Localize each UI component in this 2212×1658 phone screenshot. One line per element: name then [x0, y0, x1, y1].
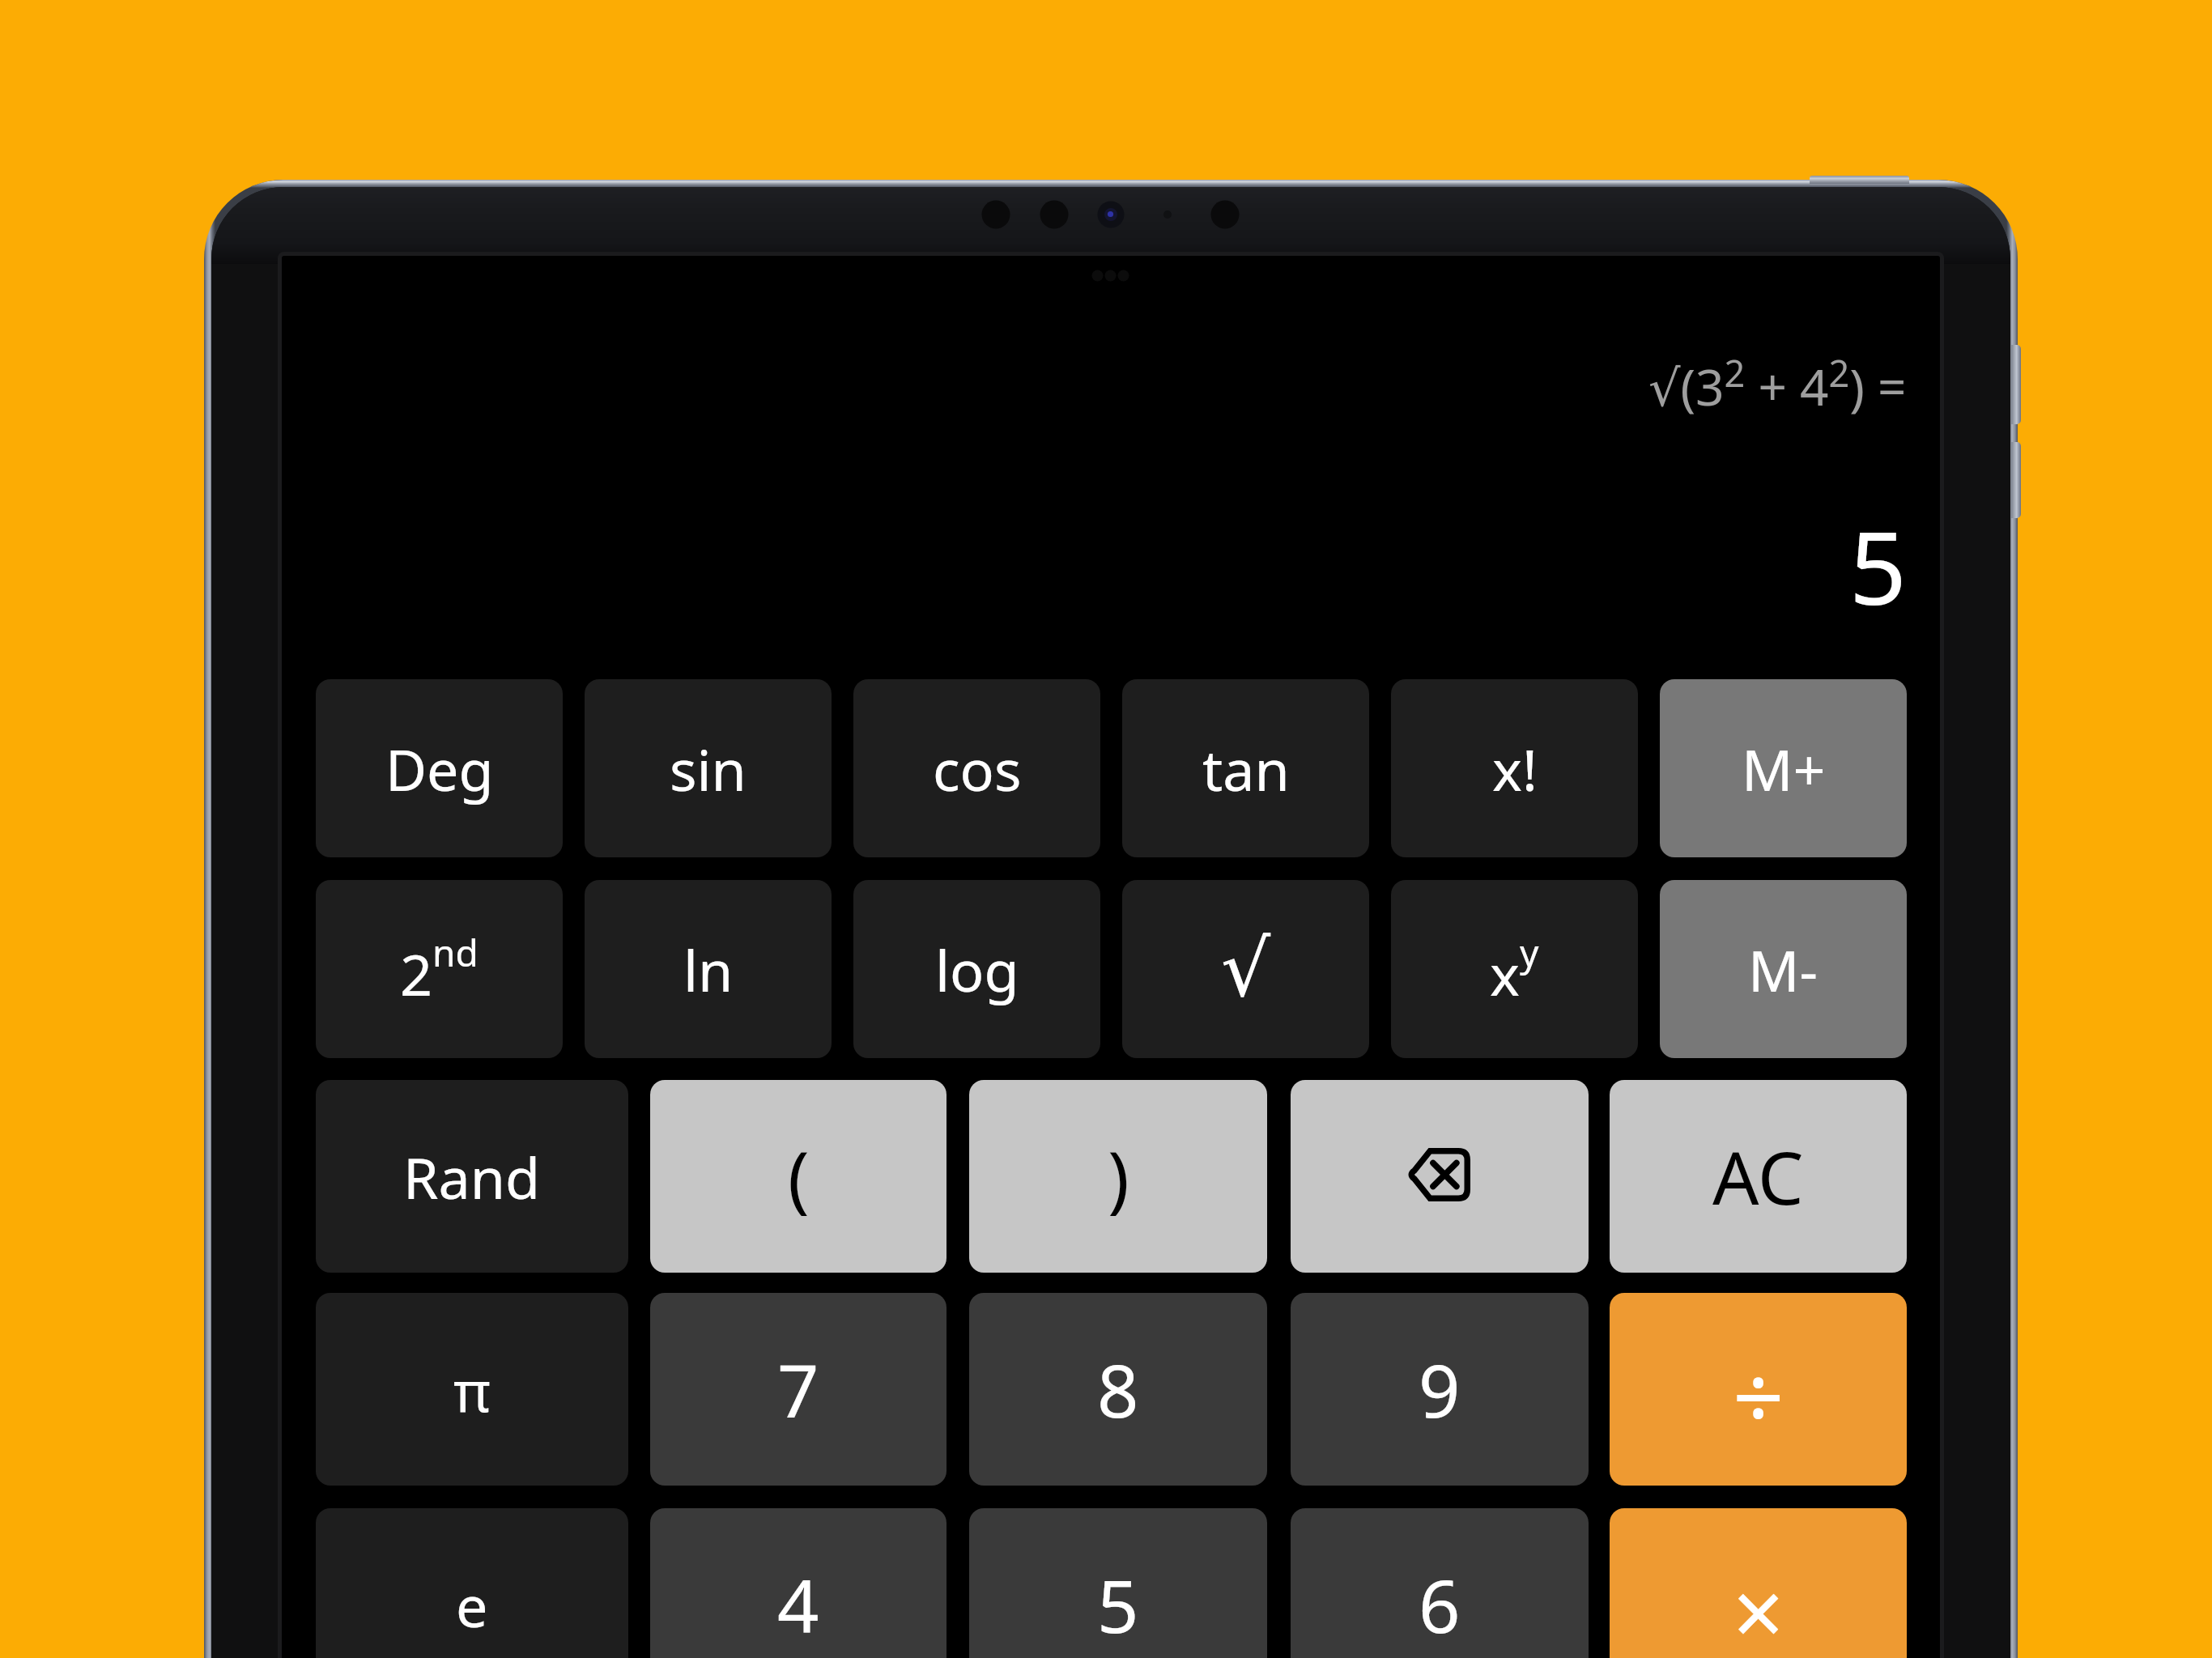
button[interactable]: 8: [969, 1293, 1267, 1486]
button[interactable]: 9: [1291, 1293, 1589, 1486]
staticText: ln: [683, 931, 734, 1008]
button[interactable]: log: [853, 880, 1100, 1058]
button[interactable]: e: [316, 1508, 628, 1658]
staticText: 5: [1097, 1555, 1139, 1655]
staticText: AC: [1712, 1127, 1804, 1226]
button[interactable]: 4: [650, 1508, 946, 1658]
staticText: π: [453, 1351, 491, 1428]
staticText: M-: [1748, 931, 1819, 1008]
staticText: √: [1221, 924, 1271, 1014]
button[interactable]: M+: [1660, 679, 1907, 857]
staticText: sin: [670, 730, 747, 807]
button[interactable]: ): [969, 1080, 1267, 1273]
staticText: Deg: [385, 730, 494, 807]
staticText: 2nd: [400, 927, 479, 1012]
staticText: ): [1108, 1128, 1129, 1226]
button[interactable]: (: [650, 1080, 946, 1273]
button[interactable]: M-: [1660, 880, 1907, 1058]
staticText: 7: [777, 1340, 819, 1439]
staticText: cos: [933, 730, 1022, 807]
button[interactable]: ln: [585, 880, 832, 1058]
staticText: √(32 + 42) =: [1648, 348, 1907, 420]
staticText: log: [935, 931, 1019, 1008]
button[interactable]: √: [1122, 880, 1369, 1058]
button[interactable]: Backspace: [1291, 1080, 1589, 1273]
staticText: 8: [1097, 1340, 1139, 1439]
staticText: M+: [1742, 730, 1826, 807]
button[interactable]: Deg: [316, 679, 563, 857]
staticText: x!: [1492, 730, 1538, 807]
button[interactable]: xy: [1391, 880, 1638, 1058]
button[interactable]: ÷: [1610, 1293, 1907, 1486]
button[interactable]: ×: [1610, 1508, 1907, 1658]
staticText: 9: [1419, 1340, 1461, 1439]
button[interactable]: Rand: [316, 1080, 628, 1273]
staticText: ÷: [1733, 1334, 1784, 1456]
button[interactable]: 6: [1291, 1508, 1589, 1658]
staticText: 4: [777, 1555, 819, 1655]
button[interactable]: sin: [585, 679, 832, 857]
button[interactable]: x!: [1391, 679, 1638, 857]
button[interactable]: AC: [1610, 1080, 1907, 1273]
button[interactable]: 2nd: [316, 880, 563, 1058]
button[interactable]: cos: [853, 679, 1100, 857]
staticText: 6: [1419, 1555, 1461, 1655]
button[interactable]: 5: [969, 1508, 1267, 1658]
button[interactable]: π: [316, 1293, 628, 1486]
staticText: e: [456, 1567, 488, 1643]
staticText: tan: [1202, 730, 1290, 807]
staticText: xy: [1490, 927, 1539, 1012]
staticText: ×: [1733, 1550, 1784, 1658]
button[interactable]: 7: [650, 1293, 946, 1486]
staticText: 5: [1849, 497, 1907, 634]
staticText: Rand: [403, 1138, 541, 1215]
button[interactable]: tan: [1122, 679, 1369, 857]
staticText: (: [788, 1128, 810, 1226]
